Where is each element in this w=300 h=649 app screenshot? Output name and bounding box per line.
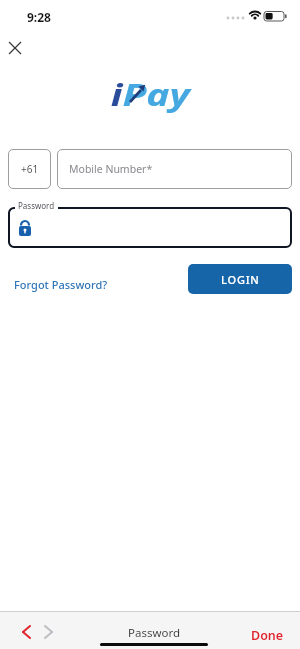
- button[interactable]: Password: [100, 611, 208, 646]
- button[interactable]: [38, 623, 58, 641]
- staticText: +61: [21, 162, 39, 176]
- button[interactable]: Forgot Password?: [8, 271, 114, 298]
- button[interactable]: LOGIN: [188, 264, 292, 294]
- staticText: Forgot Password?: [14, 277, 108, 292]
- button[interactable]: [16, 623, 36, 641]
- staticText: Done: [251, 627, 284, 644]
- staticText: LOGIN: [221, 272, 260, 287]
- staticText: 9:28: [27, 9, 51, 25]
- button[interactable]: Done: [243, 619, 292, 649]
- button[interactable]: [4, 37, 26, 59]
- staticText: Password: [18, 200, 55, 211]
- staticText: Mobile Number*: [69, 162, 153, 176]
- staticText: iPay: [111, 73, 190, 115]
- staticText: Password: [128, 625, 181, 641]
